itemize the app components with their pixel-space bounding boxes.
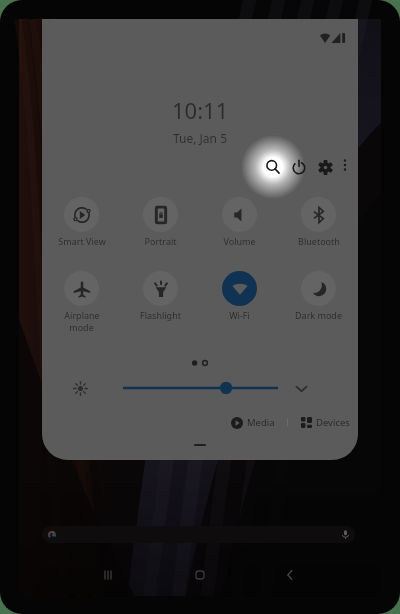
button[interactable]: Flashlight [121,269,200,343]
button[interactable]: Settings [312,154,338,180]
button[interactable]: Recents [88,557,128,592]
button[interactable]: Power [286,154,312,180]
button[interactable]: Volume [200,195,279,269]
button[interactable]: Search [260,154,286,180]
button[interactable]: Dark mode [279,269,358,343]
button[interactable]: Portrait [121,195,200,269]
staticText: mode [69,321,94,333]
staticText: Tue, Jan 5 [173,130,228,146]
button[interactable]: Media [231,416,275,429]
staticText: Smart View [58,235,106,247]
staticText: Flashlight [140,309,181,321]
staticText: Media [247,416,275,429]
other: Google Search [48,531,56,539]
button[interactable]: Devices [301,416,350,429]
staticText: Portrait [144,235,177,247]
staticText: Devices [316,416,350,429]
button[interactable]: Bluetooth [279,195,358,269]
button[interactable]: More options [334,154,356,176]
staticText: Airplane [64,309,100,321]
staticText: Dark mode [295,309,342,321]
button[interactable]: Home [180,557,220,592]
staticText: 10:11 [172,95,229,125]
button[interactable]: Google Search [42,526,355,543]
button[interactable]: Back [270,557,310,592]
button[interactable]: Airplane [42,269,121,343]
staticText: Bluetooth [298,235,340,247]
staticText: Wi-Fi [229,309,250,321]
staticText: Volume [223,235,256,247]
button[interactable]: Smart View [42,195,121,269]
other: Voice search [341,530,350,539]
button[interactable]: Wi-Fi [200,269,279,343]
